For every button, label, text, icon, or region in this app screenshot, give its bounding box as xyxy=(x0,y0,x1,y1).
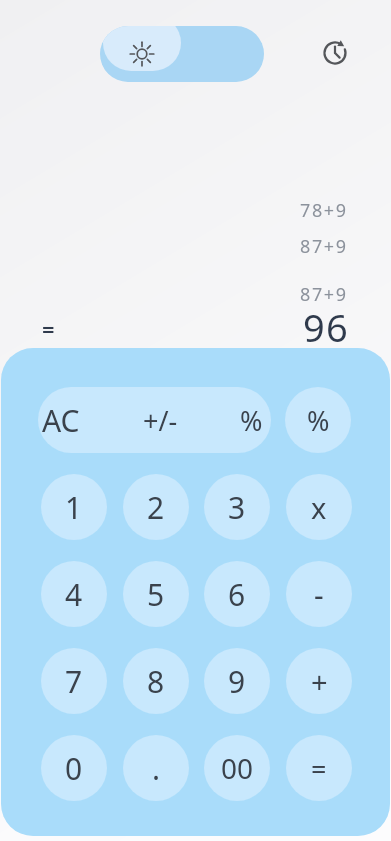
button[interactable]: 0 xyxy=(41,735,107,801)
button[interactable]: . xyxy=(123,735,189,801)
staticText: 5 xyxy=(147,574,165,615)
staticText: AC xyxy=(42,400,80,441)
button[interactable]: 3 xyxy=(204,474,270,540)
staticText: . xyxy=(152,748,161,789)
staticText: 4 xyxy=(65,574,83,615)
button[interactable]: 1 xyxy=(41,474,107,540)
staticText: - xyxy=(314,574,324,615)
button[interactable]: 9 xyxy=(204,648,270,714)
staticText: 3 xyxy=(228,487,246,528)
button[interactable] xyxy=(100,26,264,82)
staticText: 7 xyxy=(65,661,83,702)
button[interactable]: 4 xyxy=(41,561,107,627)
staticText: % xyxy=(240,402,263,439)
staticText: 8 xyxy=(147,661,165,702)
button[interactable] xyxy=(317,35,353,71)
staticText: +/- xyxy=(143,402,178,439)
staticText: 2 xyxy=(147,487,165,528)
button[interactable]: 00 xyxy=(204,735,270,801)
staticText: 96 xyxy=(303,301,349,345)
staticText: x xyxy=(311,488,327,527)
staticText: = xyxy=(42,314,55,339)
button[interactable]: + xyxy=(286,648,352,714)
staticText: 00 xyxy=(221,749,254,787)
staticText: 1 xyxy=(65,487,83,528)
staticText: = xyxy=(311,750,327,787)
button[interactable]: - xyxy=(286,561,352,627)
staticText: 87+9 xyxy=(300,282,348,304)
button[interactable]: 7 xyxy=(41,648,107,714)
staticText: 0 xyxy=(65,748,83,789)
button[interactable]: % xyxy=(285,387,351,453)
staticText: 87+9 xyxy=(300,234,348,256)
button[interactable]: +/- xyxy=(143,402,178,439)
button[interactable]: AC xyxy=(42,400,80,441)
staticText: 78+9 xyxy=(300,198,348,220)
staticText: + xyxy=(311,662,328,701)
staticText: 9 xyxy=(228,661,246,702)
button[interactable]: 5 xyxy=(123,561,189,627)
button[interactable]: 6 xyxy=(204,561,270,627)
button[interactable]: % xyxy=(240,402,263,439)
button[interactable]: 2 xyxy=(123,474,189,540)
button[interactable]: x xyxy=(286,474,352,540)
staticText: % xyxy=(307,402,330,439)
button[interactable]: = xyxy=(286,735,352,801)
staticText: 6 xyxy=(228,574,246,615)
button[interactable]: 8 xyxy=(123,648,189,714)
